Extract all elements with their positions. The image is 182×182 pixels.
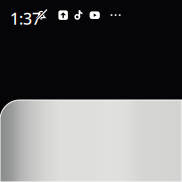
staticText: 1:37	[10, 8, 41, 29]
button[interactable]: Status bar	[0, 0, 182, 28]
